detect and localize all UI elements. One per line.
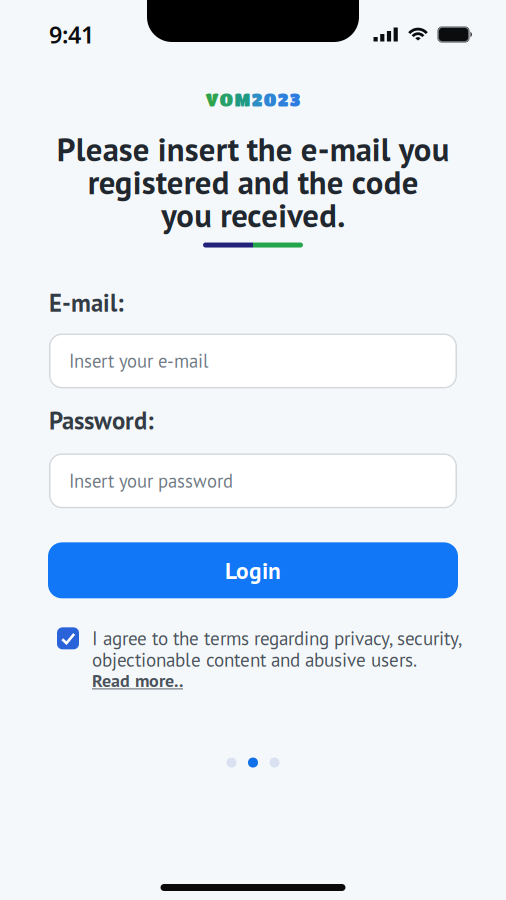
staticText: objectionable content and abusive users. <box>92 649 417 670</box>
staticText: Please insert the e-mail you registered … <box>56 133 449 231</box>
button[interactable]: Read more.. <box>92 670 183 691</box>
button[interactable]: Login <box>48 542 458 598</box>
staticText: 2 <box>251 89 262 110</box>
staticText: Insert your password <box>69 469 233 493</box>
staticText: E-mail: <box>49 286 124 318</box>
staticText: 0 <box>263 89 276 110</box>
staticText: 3 <box>289 89 300 110</box>
staticText: Login <box>225 555 281 585</box>
staticText: 9:41 <box>49 19 94 50</box>
button[interactable]: Insert your password <box>49 453 457 508</box>
staticText: M <box>234 89 250 110</box>
button[interactable]: Page 2 <box>248 758 258 768</box>
staticText: Insert your e-mail <box>69 349 208 373</box>
button[interactable]: Insert your e-mail <box>49 333 457 388</box>
button[interactable]: I agree to the terms <box>57 627 79 649</box>
staticText: 2 <box>277 89 288 110</box>
staticText: I agree to the terms regarding privacy, … <box>92 627 462 649</box>
staticText: O <box>219 89 233 110</box>
staticText: Password: <box>49 404 154 436</box>
staticText: Read more.. <box>92 670 183 691</box>
staticText: V <box>205 89 218 110</box>
